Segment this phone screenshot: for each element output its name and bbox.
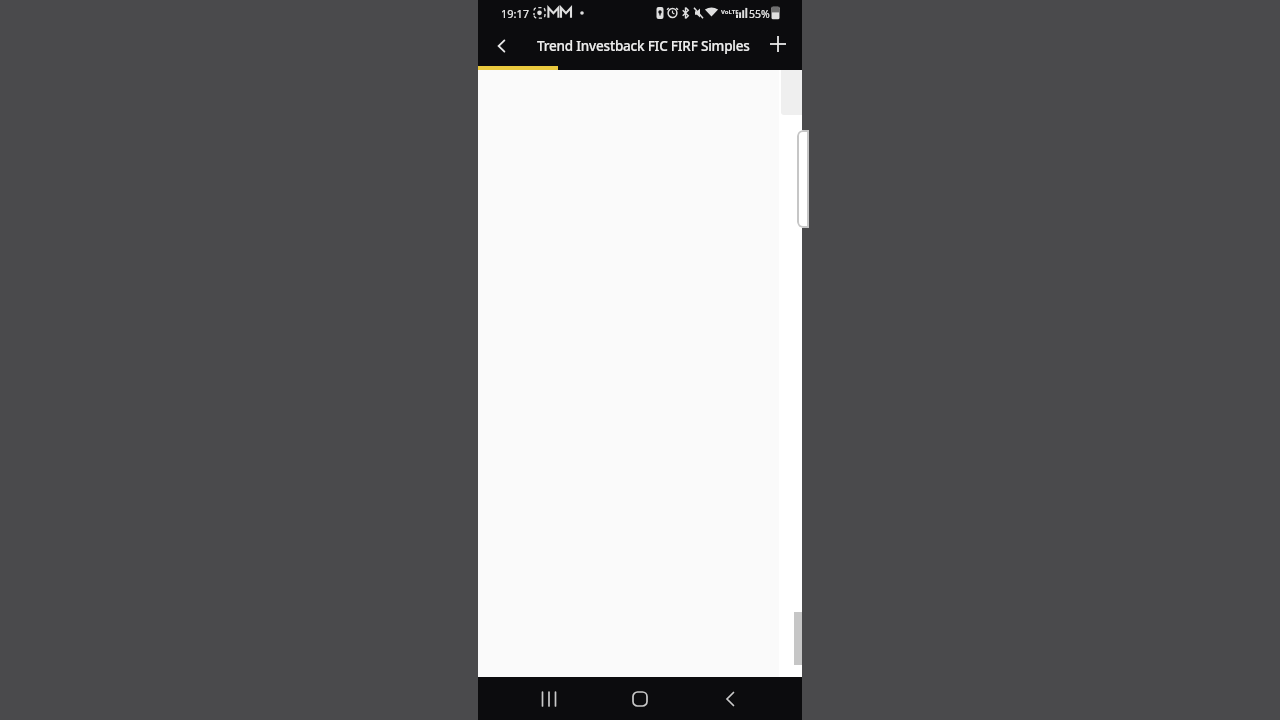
staticText: VoLTE bbox=[721, 8, 739, 16]
button[interactable] bbox=[487, 32, 515, 60]
staticText: 55% bbox=[749, 7, 770, 21]
staticText: 19:17 bbox=[501, 6, 530, 21]
button[interactable] bbox=[715, 684, 745, 714]
button[interactable] bbox=[764, 30, 792, 58]
button[interactable] bbox=[625, 684, 655, 714]
staticText: Trend Investback FIC FIRF Simples bbox=[537, 37, 750, 55]
button[interactable] bbox=[534, 684, 564, 714]
